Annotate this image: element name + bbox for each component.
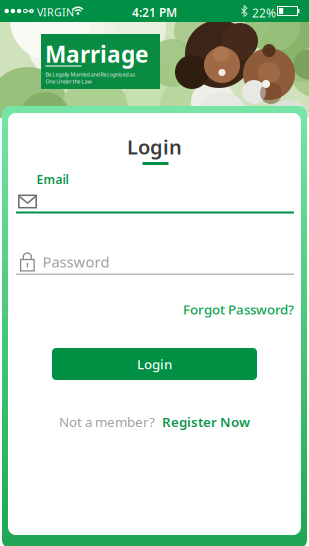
staticText: 4:21 PM [132,4,177,20]
staticText: Login [137,355,172,373]
staticText: Password [42,252,109,271]
button[interactable]: Login [52,348,257,380]
button[interactable]: Forgot Password? [183,300,294,318]
staticText: One Under the Law [45,78,91,85]
staticText: 22% [252,5,276,21]
staticText: Be Legally Married and Recognised as [45,71,135,78]
staticText: Email [36,171,68,187]
staticText: VIRGIN [37,5,74,19]
staticText: Forgot Password? [183,300,294,318]
staticText: Login [127,133,182,160]
staticText: Not a member? [59,413,155,431]
button[interactable]: Email [15,172,294,216]
button[interactable]: Password [15,246,294,275]
staticText: Marriage [45,39,149,69]
button[interactable]: Register Now [162,413,250,431]
staticText: Register Now [162,413,250,431]
